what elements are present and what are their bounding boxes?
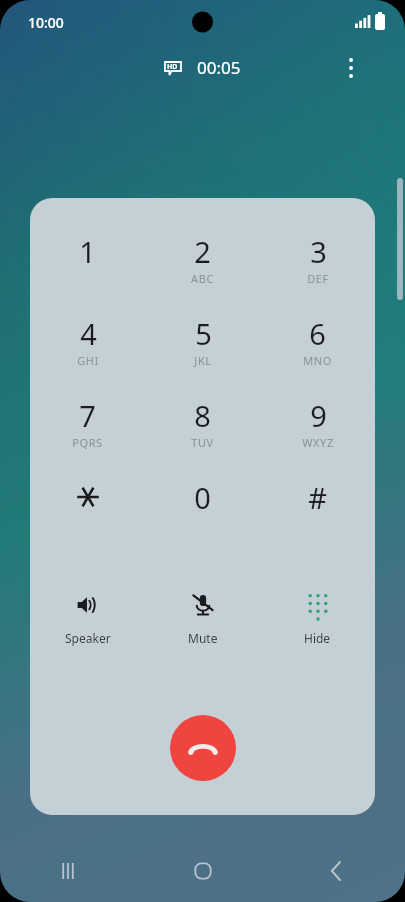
button[interactable]: 7 [30, 396, 145, 468]
staticText: 5 [195, 314, 212, 353]
button[interactable]: End call [170, 715, 236, 781]
button[interactable]: 1 [30, 232, 145, 304]
staticText: JKL [194, 353, 212, 368]
staticText: Mute [188, 630, 218, 646]
button[interactable]: Speaker [30, 588, 145, 658]
staticText: TUV [191, 435, 214, 450]
staticText: ABC [191, 271, 214, 286]
button[interactable]: 6 [260, 314, 375, 386]
button[interactable]: 2 [145, 232, 260, 304]
staticText: WXYZ [302, 435, 334, 450]
staticText: 00:05 [197, 56, 241, 79]
button[interactable]: 3 [260, 232, 375, 304]
staticText: 8 [194, 396, 211, 435]
staticText: GHI [77, 353, 99, 368]
button[interactable]: 0 [145, 478, 260, 550]
staticText: PQRS [72, 435, 103, 450]
button[interactable]: Home [135, 840, 270, 902]
button[interactable]: More options [331, 48, 371, 88]
button[interactable]: 5 [145, 314, 260, 386]
staticText: 10:00 [28, 13, 64, 32]
staticText: MNO [303, 353, 332, 368]
staticText: 4 [80, 314, 97, 353]
staticText: # [308, 478, 327, 517]
staticText: 6 [309, 314, 326, 353]
button[interactable]: Recents [0, 840, 135, 902]
staticText: 9 [310, 396, 327, 435]
button[interactable]: Hide [260, 588, 375, 658]
staticText: Speaker [65, 630, 111, 646]
staticText: 0 [194, 478, 211, 517]
button[interactable]: Back [270, 840, 405, 902]
button[interactable]: 9 [260, 396, 375, 468]
staticText: Hide [304, 630, 331, 646]
button[interactable]: 4 [30, 314, 145, 386]
button[interactable] [30, 478, 145, 550]
staticText: 7 [79, 396, 96, 435]
staticText: 3 [310, 232, 327, 271]
staticText: 2 [194, 232, 211, 271]
staticText: HD [167, 62, 178, 72]
button[interactable]: 8 [145, 396, 260, 468]
staticText: 1 [79, 232, 96, 271]
staticText: DEF [307, 271, 329, 286]
button[interactable]: # [260, 478, 375, 550]
button[interactable]: Mute [145, 588, 260, 658]
